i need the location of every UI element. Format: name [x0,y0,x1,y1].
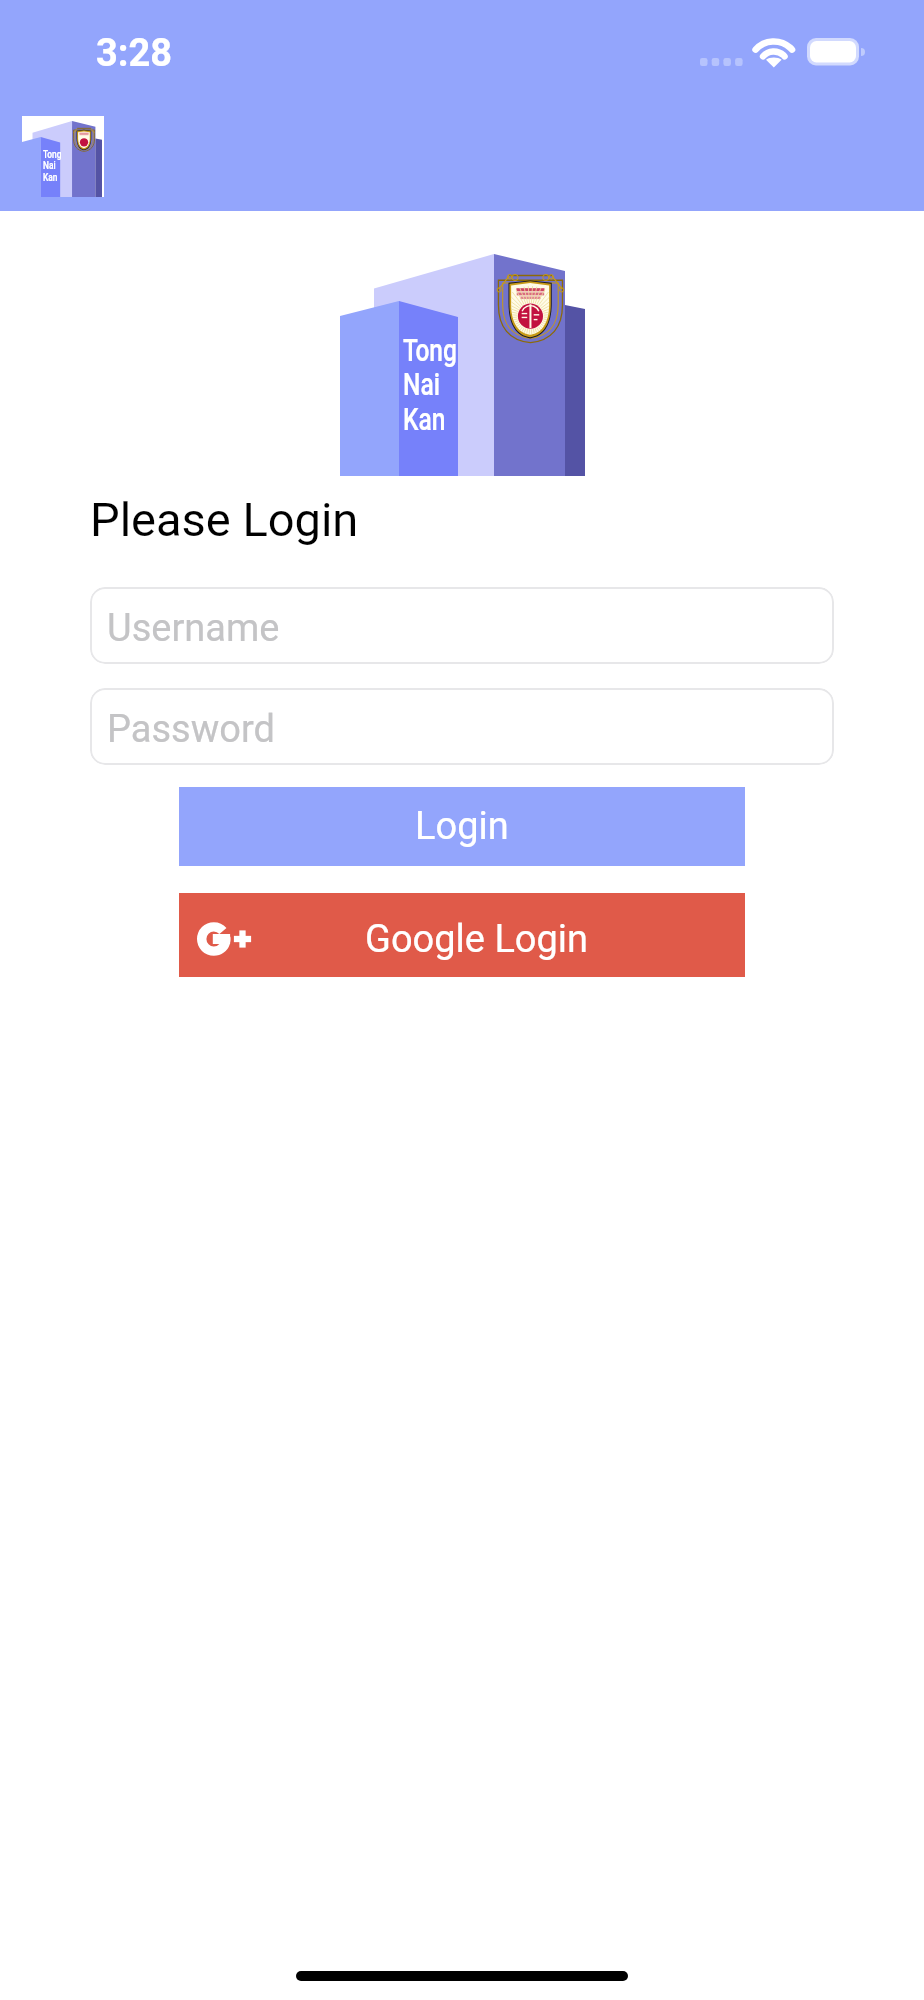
button[interactable]: Username [90,587,834,664]
staticText: Tong Nai Kan [43,148,62,184]
button[interactable]: Google Login [179,893,745,977]
button[interactable]: Password [90,688,834,765]
staticText: Tong Nai Kan [403,332,457,438]
staticText: Please Login [90,492,359,547]
button[interactable]: Login [179,787,745,866]
staticText: 3:28 [96,31,173,76]
staticText: Password [107,707,275,752]
staticText: Login [415,804,509,849]
other: Google logo [197,919,255,959]
staticText: Google Login [365,917,589,962]
other: Status icons [694,30,870,70]
other: App icon [22,116,104,197]
staticText: Username [107,606,280,651]
